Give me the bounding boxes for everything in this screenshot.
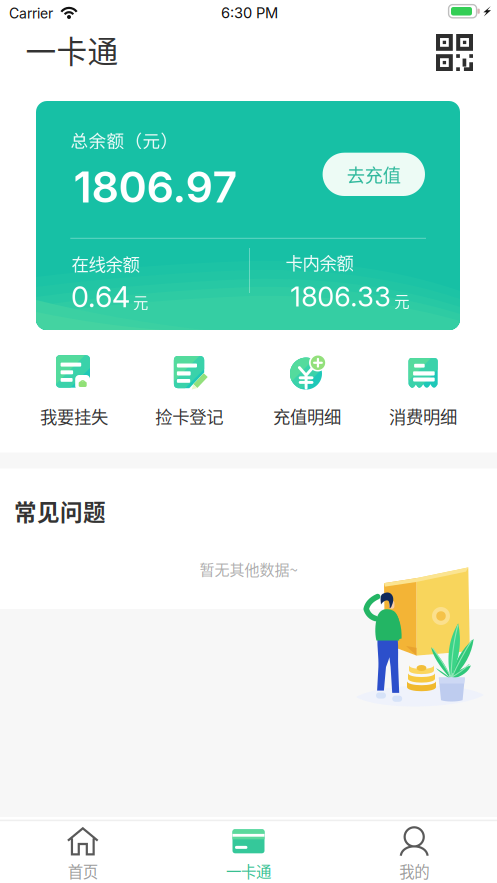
- staticText: 0.64: [71, 279, 130, 314]
- button[interactable]: 捡卡登记: [134, 352, 244, 428]
- staticText: 元: [394, 289, 409, 311]
- staticText: 充值明细: [273, 403, 341, 429]
- button[interactable]: 消费明细: [368, 352, 478, 428]
- staticText: 捡卡登记: [155, 403, 223, 429]
- staticText: 我要挂失: [40, 403, 108, 429]
- staticText: 首页: [68, 860, 98, 882]
- staticText: 1806.33: [290, 280, 391, 313]
- staticText: 总余额（元）: [70, 127, 178, 152]
- button[interactable]: 首页: [0, 821, 165, 883]
- button[interactable]: 扫一扫: [436, 34, 473, 70]
- staticText: 常见问题: [14, 494, 106, 527]
- button[interactable]: 一卡通: [166, 821, 331, 883]
- staticText: 在线余额: [71, 251, 139, 276]
- staticText: 卡内余额: [285, 249, 353, 275]
- button[interactable]: 充值明细: [252, 352, 362, 428]
- staticText: 1806.97: [73, 161, 237, 213]
- staticText: 一卡通: [226, 860, 271, 882]
- staticText: 我的: [399, 860, 429, 882]
- button[interactable]: 我的: [332, 821, 497, 883]
- staticText: 消费明细: [389, 403, 457, 429]
- staticText: 6:30 PM: [221, 4, 278, 22]
- staticText: 一卡通: [25, 27, 118, 72]
- button[interactable]: 去充值: [323, 153, 425, 196]
- staticText: 去充值: [347, 161, 401, 188]
- button[interactable]: 我要挂失: [19, 352, 129, 428]
- staticText: 暂无其他数据~: [199, 558, 297, 580]
- staticText: 元: [133, 290, 148, 313]
- staticText: Carrier: [9, 5, 53, 22]
